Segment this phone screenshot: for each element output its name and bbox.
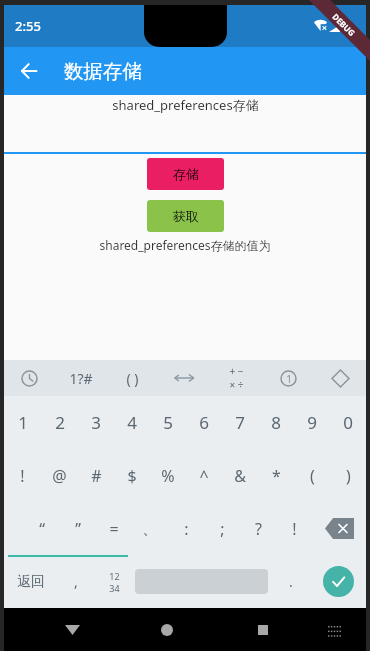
- staticText: =: [109, 518, 119, 540]
- button[interactable]: Back: [10, 52, 48, 90]
- button[interactable]: @: [41, 449, 78, 502]
- staticText: 存储: [173, 166, 199, 182]
- staticText: (: [310, 465, 315, 487]
- staticText: 7: [235, 411, 245, 434]
- staticText: 8: [271, 411, 281, 434]
- staticText: ( ): [126, 369, 139, 388]
- staticText: shared_preferences存储: [112, 96, 259, 114]
- button[interactable]: 返回: [4, 555, 57, 608]
- button[interactable]: 2: [41, 396, 78, 449]
- staticText: %: [161, 465, 175, 487]
- button[interactable]: ;: [204, 502, 240, 555]
- button[interactable]: Number keyboard: [95, 555, 133, 608]
- staticText: ?: [255, 518, 262, 540]
- staticText: #: [91, 465, 102, 487]
- button[interactable]: ”: [60, 502, 96, 555]
- button[interactable]: Math: [210, 360, 262, 396]
- button[interactable]: Enter: [311, 555, 366, 608]
- button[interactable]: Numbers: [262, 360, 314, 396]
- button[interactable]: &: [222, 449, 258, 502]
- button[interactable]: .: [270, 555, 311, 608]
- staticText: &: [234, 465, 246, 487]
- button[interactable]: 3: [78, 396, 114, 449]
- staticText: 5: [163, 411, 173, 434]
- button[interactable]: Shapes: [314, 360, 366, 396]
- button[interactable]: =: [96, 502, 132, 555]
- button[interactable]: Space: [133, 555, 270, 608]
- button[interactable]: *: [258, 449, 294, 502]
- button[interactable]: Home: [147, 610, 187, 650]
- button[interactable]: 8: [258, 396, 294, 449]
- staticText: ”: [75, 518, 81, 540]
- staticText: !: [292, 518, 297, 540]
- staticText: DEBUG: [330, 11, 358, 38]
- staticText: .: [289, 572, 293, 591]
- button[interactable]: 4: [114, 396, 150, 449]
- button[interactable]: #: [78, 449, 114, 502]
- staticText: :: [184, 518, 189, 540]
- staticText: 3: [91, 411, 101, 434]
- button[interactable]: Clock: [4, 360, 55, 396]
- staticText: 获取: [173, 208, 199, 224]
- staticText: 0: [343, 411, 353, 434]
- staticText: 、: [142, 519, 158, 539]
- staticText: 6: [199, 411, 209, 434]
- button[interactable]: 0: [330, 396, 366, 449]
- button[interactable]: %: [150, 449, 186, 502]
- button[interactable]: (: [294, 449, 330, 502]
- staticText: 数据存储: [64, 59, 142, 84]
- staticText: ): [346, 465, 351, 487]
- button[interactable]: ): [330, 449, 366, 502]
- staticText: 1: [286, 372, 292, 386]
- staticText: ^: [199, 465, 209, 487]
- button[interactable]: Symbols: [55, 360, 106, 396]
- button[interactable]: 获取: [147, 200, 224, 232]
- staticText: ,: [74, 572, 78, 591]
- staticText: 2:55: [15, 17, 41, 35]
- button[interactable]: “: [23, 502, 60, 555]
- staticText: × ÷: [229, 378, 244, 392]
- button[interactable]: !: [276, 502, 312, 555]
- staticText: $: [127, 465, 137, 487]
- button[interactable]: 9: [294, 396, 330, 449]
- button[interactable]: Brackets: [106, 360, 158, 396]
- button[interactable]: Change keyboard: [318, 614, 350, 646]
- staticText: ;: [220, 518, 225, 540]
- staticText: !: [20, 465, 25, 487]
- button[interactable]: Arrows: [158, 360, 210, 396]
- staticText: “: [39, 518, 45, 540]
- button[interactable]: Recent apps: [243, 610, 283, 650]
- staticText: 1?#: [69, 369, 93, 388]
- staticText: *: [272, 465, 281, 487]
- button[interactable]: !: [4, 449, 41, 502]
- button[interactable]: $: [114, 449, 150, 502]
- button[interactable]: Backspace: [312, 502, 366, 555]
- button[interactable]: :: [168, 502, 204, 555]
- staticText: 1: [18, 411, 28, 434]
- button[interactable]: Back: [52, 610, 92, 650]
- button[interactable]: ^: [186, 449, 222, 502]
- button[interactable]: ?: [240, 502, 276, 555]
- staticText: 9: [307, 411, 317, 434]
- staticText: 12: [109, 570, 120, 582]
- staticText: shared_preferences存储的值为: [99, 237, 271, 253]
- button[interactable]: 1: [4, 396, 41, 449]
- button[interactable]: 存储: [147, 158, 224, 190]
- staticText: 返回: [17, 573, 45, 591]
- staticText: + −: [229, 364, 244, 378]
- button[interactable]: ,: [57, 555, 95, 608]
- staticText: 2: [55, 411, 65, 434]
- button[interactable]: 、: [132, 502, 168, 555]
- staticText: @: [52, 465, 67, 487]
- button[interactable]: 6: [186, 396, 222, 449]
- staticText: 34: [109, 582, 120, 594]
- button[interactable]: 7: [222, 396, 258, 449]
- button[interactable]: 5: [150, 396, 186, 449]
- staticText: 4: [127, 411, 137, 434]
